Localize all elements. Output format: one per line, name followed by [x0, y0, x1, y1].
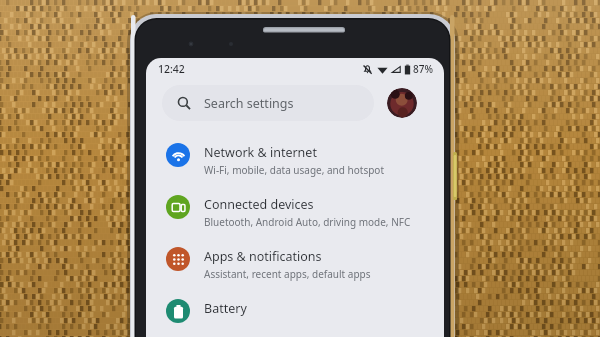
button[interactable]: Apps & notifications: [146, 247, 444, 281]
staticText: Apps & notifications: [204, 248, 322, 265]
staticText: Wi-Fi, mobile, data usage, and hotspot: [204, 163, 384, 177]
staticText: 87%: [413, 62, 433, 76]
staticText: Assistant, recent apps, default apps: [204, 267, 371, 281]
staticText: Battery: [204, 300, 247, 317]
staticText: Bluetooth, Android Auto, driving mode, N…: [204, 215, 411, 229]
button[interactable]: Network & internet: [146, 143, 444, 177]
button[interactable]: Account: [387, 88, 417, 118]
staticText: Search settings: [204, 95, 294, 112]
staticText: 12:42: [158, 62, 185, 76]
button[interactable]: Search settings: [162, 85, 374, 121]
button[interactable]: Battery: [146, 299, 444, 323]
staticText: Network & internet: [204, 144, 317, 161]
staticText: Connected devices: [204, 196, 314, 213]
button[interactable]: Connected devices: [146, 195, 444, 229]
